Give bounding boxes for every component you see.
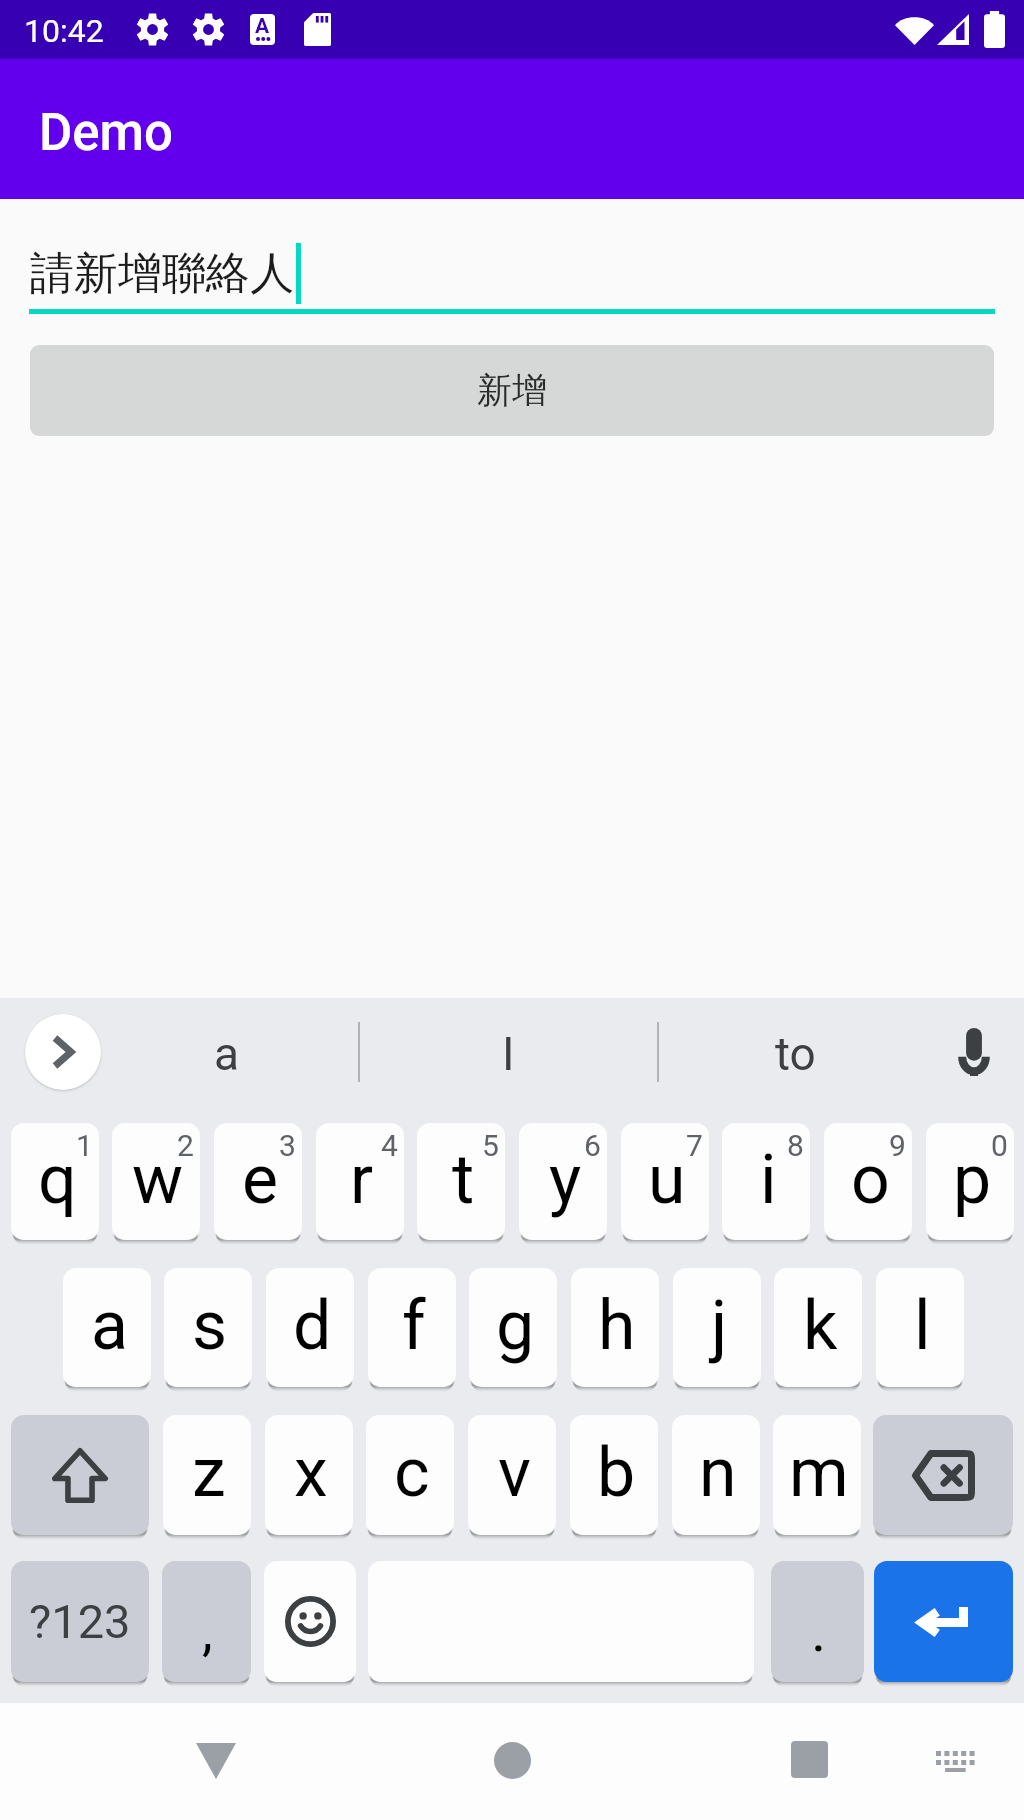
button[interactable]: v: [468, 1415, 556, 1535]
staticText: 1: [76, 1128, 93, 1163]
staticText: x: [294, 1433, 328, 1513]
staticText: 6: [584, 1128, 601, 1163]
staticText: I: [502, 1027, 515, 1081]
button[interactable]: q: [11, 1123, 99, 1240]
button[interactable]: r: [316, 1123, 404, 1240]
staticText: o: [851, 1140, 890, 1220]
button[interactable]: a: [63, 1268, 151, 1387]
button[interactable]: i: [722, 1123, 810, 1240]
button[interactable]: Expand suggestions: [25, 1014, 101, 1090]
staticText: m: [789, 1433, 849, 1513]
staticText: h: [598, 1286, 636, 1366]
staticText: y: [549, 1140, 582, 1220]
staticText: u: [648, 1140, 686, 1220]
staticText: n: [699, 1433, 737, 1513]
staticText: e: [242, 1140, 279, 1220]
staticText: ,: [202, 1600, 213, 1663]
button[interactable]: Recents: [753, 1703, 865, 1815]
staticText: a: [214, 1027, 240, 1081]
staticText: Demo: [39, 103, 173, 163]
button[interactable]: Back: [160, 1705, 272, 1817]
button[interactable]: Switch keyboard: [905, 1711, 1005, 1811]
staticText: 8: [787, 1128, 804, 1163]
button[interactable]: Comma: [162, 1561, 251, 1682]
button[interactable]: h: [571, 1268, 659, 1387]
staticText: z: [192, 1433, 226, 1513]
staticText: 2: [177, 1128, 194, 1163]
staticText: ?123: [29, 1594, 131, 1649]
button[interactable]: w: [112, 1123, 200, 1240]
button[interactable]: Period: [771, 1561, 864, 1682]
staticText: 4: [381, 1128, 398, 1163]
button[interactable]: c: [366, 1415, 454, 1535]
button[interactable]: s: [164, 1268, 252, 1387]
button[interactable]: Shift: [11, 1415, 149, 1535]
button[interactable]: o: [824, 1123, 912, 1240]
button[interactable]: m: [773, 1415, 861, 1535]
staticText: d: [293, 1286, 332, 1366]
button[interactable]: n: [672, 1415, 760, 1535]
staticText: 10:42: [24, 12, 104, 50]
button[interactable]: a: [114, 998, 339, 1111]
button[interactable]: b: [570, 1415, 658, 1535]
staticText: p: [953, 1140, 992, 1220]
staticText: a: [91, 1286, 128, 1366]
staticText: w: [132, 1140, 184, 1220]
staticText: c: [394, 1433, 430, 1513]
staticText: f: [402, 1286, 426, 1366]
button[interactable]: to: [659, 998, 931, 1111]
button[interactable]: Enter: [874, 1561, 1013, 1682]
staticText: g: [496, 1286, 535, 1366]
staticText: t: [452, 1140, 475, 1220]
staticText: l: [914, 1286, 931, 1366]
staticText: to: [775, 1027, 816, 1081]
staticText: 新增: [477, 368, 547, 412]
staticText: 3: [279, 1128, 296, 1163]
staticText: .: [811, 1597, 827, 1665]
staticText: j: [711, 1286, 728, 1366]
button[interactable]: p: [926, 1123, 1014, 1240]
button[interactable]: Backspace: [873, 1415, 1013, 1535]
staticText: 9: [889, 1128, 906, 1163]
button[interactable]: u: [621, 1123, 709, 1240]
button[interactable]: j: [673, 1268, 761, 1387]
button[interactable]: d: [266, 1268, 354, 1387]
staticText: A: [255, 14, 270, 39]
button[interactable]: Home: [456, 1704, 568, 1816]
button[interactable]: 新增: [30, 345, 994, 436]
button[interactable]: f: [368, 1268, 456, 1387]
button[interactable]: Emoji: [264, 1561, 356, 1682]
button[interactable]: I: [360, 998, 657, 1111]
staticText: 請新增聯絡人: [30, 246, 294, 301]
staticText: r: [350, 1140, 374, 1220]
button[interactable]: g: [469, 1268, 557, 1387]
button[interactable]: Voice input: [927, 1005, 1021, 1099]
button[interactable]: e: [214, 1123, 302, 1240]
button[interactable]: ?123: [11, 1561, 149, 1682]
button[interactable]: k: [774, 1268, 862, 1387]
staticText: 5: [482, 1128, 499, 1163]
staticText: 0: [991, 1128, 1008, 1163]
staticText: 7: [686, 1128, 703, 1163]
staticText: s: [192, 1286, 228, 1366]
button[interactable]: x: [265, 1415, 353, 1535]
staticText: v: [498, 1433, 531, 1513]
button[interactable]: l: [876, 1268, 964, 1387]
staticText: i: [760, 1140, 777, 1220]
staticText: b: [597, 1433, 636, 1513]
button[interactable]: z: [163, 1415, 251, 1535]
staticText: k: [803, 1286, 838, 1366]
button[interactable]: y: [519, 1123, 607, 1240]
staticText: q: [38, 1140, 77, 1220]
button[interactable]: t: [417, 1123, 505, 1240]
